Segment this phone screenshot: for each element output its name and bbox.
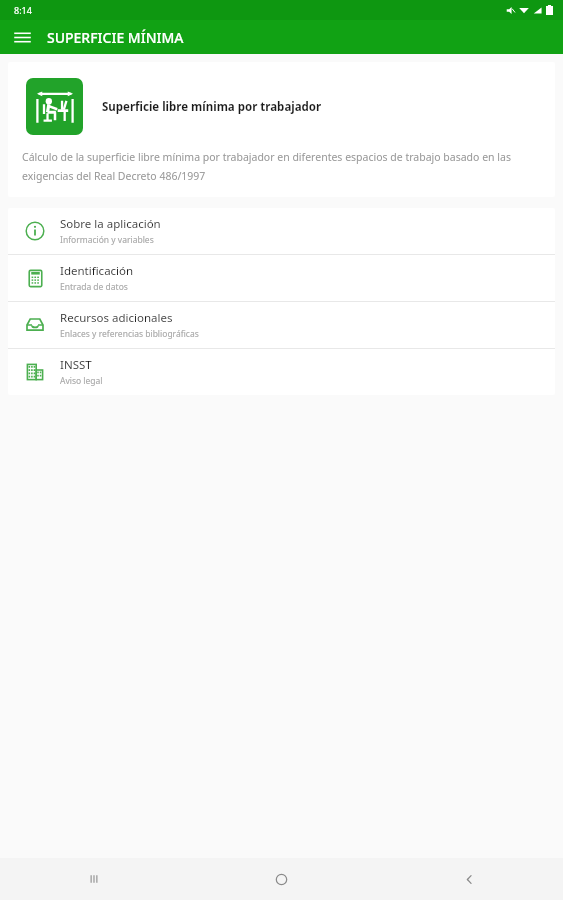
staticText: Superficie libre mínima por trabajador (102, 99, 322, 115)
staticText: Aviso legal (60, 375, 103, 387)
staticText: Enlaces y referencias bibliográficas (60, 328, 199, 340)
staticText: Recursos adicionales (60, 310, 173, 326)
staticText: Identificación (60, 263, 134, 279)
button[interactable]: Recursos adicionales (8, 302, 555, 348)
staticText: SUPERFICIE MÍNIMA (47, 28, 184, 47)
button[interactable]: Identificación (8, 255, 555, 301)
button[interactable]: Sobre la aplicación (8, 208, 555, 254)
button[interactable]: Home (187, 858, 375, 900)
button[interactable]: Back (375, 858, 563, 900)
button[interactable]: INSST (8, 349, 555, 395)
staticText: Entrada de datos (60, 281, 128, 293)
staticText: 8:14 (14, 4, 32, 16)
staticText: Cálculo de la superficie libre mínima po… (22, 150, 544, 183)
staticText: Información y variables (60, 234, 154, 246)
button[interactable]: Open navigation menu (8, 23, 36, 51)
button[interactable]: Recent apps (0, 858, 187, 900)
staticText: Sobre la aplicación (60, 216, 161, 232)
staticText: INSST (60, 357, 92, 373)
